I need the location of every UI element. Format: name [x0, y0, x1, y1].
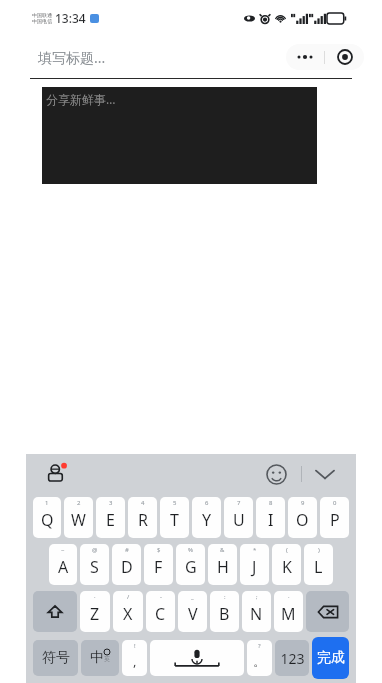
staticText: O — [296, 509, 309, 531]
button[interactable]: 123 — [275, 640, 309, 676]
staticText: · — [288, 593, 290, 601]
staticText: N — [250, 603, 263, 625]
button[interactable]: / — [113, 591, 143, 632]
button[interactable]: 7 — [224, 497, 253, 538]
button[interactable]: 5 — [160, 497, 189, 538]
staticText: $ — [157, 546, 161, 554]
button[interactable]: % — [176, 544, 205, 585]
staticText: ; — [256, 593, 258, 601]
staticText: · — [94, 593, 96, 601]
staticText: Q — [41, 509, 54, 531]
button[interactable]: 完成 — [312, 637, 349, 679]
button[interactable]: Input settings — [42, 459, 72, 489]
button[interactable]: _ — [178, 591, 207, 632]
staticText: P — [330, 509, 340, 531]
staticText: 7 — [237, 499, 241, 507]
staticText: & — [220, 546, 225, 554]
staticText: G — [185, 556, 197, 578]
button[interactable]: & — [208, 544, 237, 585]
staticText: V — [188, 603, 198, 625]
staticText: 。 — [253, 653, 266, 669]
staticText: U — [233, 509, 245, 531]
button[interactable]: 中 — [81, 640, 119, 676]
staticText: S — [90, 556, 99, 578]
button[interactable]: : — [210, 591, 239, 632]
staticText: 3 — [109, 499, 113, 507]
staticText: 完成 — [317, 649, 345, 667]
button[interactable]: ! — [122, 640, 147, 676]
staticText: 英 — [104, 655, 110, 663]
staticText: _ — [191, 593, 194, 601]
button[interactable]: 8 — [256, 497, 285, 538]
button[interactable]: $ — [144, 544, 173, 585]
staticText: F — [154, 556, 163, 578]
staticText: % — [188, 546, 193, 554]
staticText: L — [314, 556, 323, 578]
button[interactable]: 1 — [33, 497, 61, 538]
button[interactable]: 分享新鲜事… — [42, 87, 317, 184]
button[interactable]: · — [80, 591, 110, 632]
button[interactable]: * — [240, 544, 269, 585]
staticText: J — [252, 556, 257, 578]
button[interactable]: ) — [304, 544, 333, 585]
button[interactable]: 4 — [128, 497, 157, 538]
button[interactable]: 填写标题... — [38, 48, 106, 67]
button[interactable]: Close — [325, 44, 364, 70]
button[interactable]: ; — [242, 591, 271, 632]
staticText: 符号 — [42, 649, 70, 667]
button[interactable]: More options — [286, 44, 324, 70]
button[interactable]: 符号 — [33, 640, 78, 676]
button[interactable]: - — [146, 591, 175, 632]
other: Shift — [47, 604, 63, 620]
staticText: R — [138, 509, 148, 531]
button[interactable]: Emoji — [261, 459, 291, 489]
staticText: D — [121, 556, 133, 578]
staticText: 13:34 — [55, 10, 86, 26]
staticText: 9 — [301, 499, 305, 507]
staticText: ! — [134, 642, 136, 650]
button[interactable]: 3 — [96, 497, 125, 538]
button[interactable]: Space / Voice input — [150, 640, 244, 676]
staticText: 6 — [205, 499, 209, 507]
staticText: B — [219, 603, 230, 625]
staticText: 123 — [280, 649, 305, 668]
button[interactable]: ? — [247, 640, 272, 676]
button[interactable]: ( — [272, 544, 301, 585]
staticText: Z — [90, 603, 100, 625]
staticText: E — [106, 509, 115, 531]
staticText: Y — [202, 509, 212, 531]
staticText: A — [58, 556, 69, 578]
button[interactable]: Hide keyboard — [310, 459, 340, 489]
other: Space / Voice input — [150, 640, 244, 676]
other: Backspace — [318, 605, 338, 619]
button[interactable]: Backspace — [306, 591, 349, 632]
button[interactable]: 9 — [288, 497, 317, 538]
staticText: / — [127, 593, 130, 601]
staticText: 中 — [90, 649, 104, 667]
staticText: ? — [258, 642, 261, 650]
button[interactable]: # — [112, 544, 141, 585]
staticText: 0 — [333, 499, 337, 507]
button[interactable]: 6 — [192, 497, 221, 538]
staticText: I — [268, 509, 274, 531]
staticText: T — [170, 509, 179, 531]
button[interactable]: Shift — [33, 591, 77, 632]
button[interactable]: ~ — [49, 544, 77, 585]
staticText: , — [133, 652, 137, 670]
staticText: : — [224, 593, 226, 601]
button[interactable]: · — [274, 591, 303, 632]
button[interactable]: 0 — [320, 497, 349, 538]
staticText: K — [282, 556, 292, 578]
staticText: C — [155, 603, 166, 625]
staticText: ) — [318, 546, 320, 554]
staticText: # — [125, 546, 129, 554]
staticText: 4 — [141, 499, 145, 507]
staticText: 中国电信 — [32, 18, 52, 24]
staticText: 8 — [269, 499, 273, 507]
staticText: @ — [92, 546, 98, 554]
staticText: * — [253, 546, 257, 554]
staticText: - — [160, 593, 162, 601]
button[interactable]: @ — [80, 544, 109, 585]
staticText: 分享新鲜事… — [46, 91, 116, 107]
button[interactable]: 2 — [64, 497, 93, 538]
